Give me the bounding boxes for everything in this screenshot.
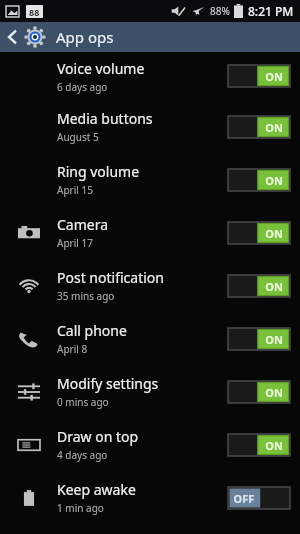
button[interactable]: Ring volume — [0, 153, 300, 206]
button[interactable]: Call phone — [0, 312, 300, 365]
button[interactable]: Media buttons toggle — [228, 116, 290, 138]
button[interactable]: Keep awake — [0, 471, 300, 524]
staticText: Keep awake — [57, 480, 136, 499]
staticText: ON — [258, 69, 290, 84]
staticText: Modify settings — [57, 374, 159, 393]
staticText: 6 days ago — [57, 80, 108, 94]
staticText: 8:21 PM — [248, 3, 294, 19]
staticText: OFF — [228, 491, 260, 506]
staticText: April 8 — [57, 342, 88, 356]
button[interactable]: Post notification toggle — [228, 275, 290, 297]
button[interactable]: Call phone toggle — [228, 328, 290, 350]
staticText: Ring volume — [57, 162, 140, 181]
staticText: 0 mins ago — [57, 395, 109, 409]
staticText: App ops — [56, 27, 114, 47]
button[interactable]: Media buttons — [0, 100, 300, 153]
button[interactable]: Camera — [0, 206, 300, 259]
staticText: 1 min ago — [57, 501, 104, 515]
staticText: 35 mins ago — [57, 289, 115, 303]
button[interactable]: Modify settings toggle — [228, 381, 290, 403]
staticText: 4 days ago — [57, 448, 108, 462]
button[interactable]: Modify settings — [0, 365, 300, 418]
button[interactable]: Draw on top — [0, 418, 300, 471]
staticText: April 15 — [57, 183, 93, 197]
staticText: Camera — [57, 215, 109, 234]
staticText: Call phone — [57, 321, 127, 340]
staticText: Post notification — [57, 268, 164, 287]
staticText: ON — [258, 385, 290, 400]
button[interactable]: Draw on top toggle — [228, 434, 290, 456]
staticText: Voice volume — [57, 59, 145, 78]
staticText: August 5 — [57, 130, 99, 144]
staticText: Draw on top — [57, 427, 139, 446]
button[interactable]: Back — [0, 22, 24, 52]
staticText: ON — [258, 120, 290, 135]
button[interactable]: Voice volume toggle — [228, 65, 290, 87]
button[interactable]: Voice volume — [0, 52, 300, 100]
button[interactable]: Post notification — [0, 259, 300, 312]
button[interactable]: Keep awake toggle — [228, 487, 290, 509]
staticText: 88% — [210, 4, 230, 18]
staticText: 88 — [29, 6, 40, 18]
staticText: ON — [258, 173, 290, 188]
staticText: ON — [258, 226, 290, 241]
button[interactable]: Camera toggle — [228, 222, 290, 244]
staticText: ON — [258, 332, 290, 347]
staticText: Media buttons — [57, 109, 153, 128]
button[interactable]: Ring volume toggle — [228, 169, 290, 191]
staticText: ON — [258, 438, 290, 453]
staticText: ON — [258, 279, 290, 294]
staticText: April 17 — [57, 236, 93, 250]
